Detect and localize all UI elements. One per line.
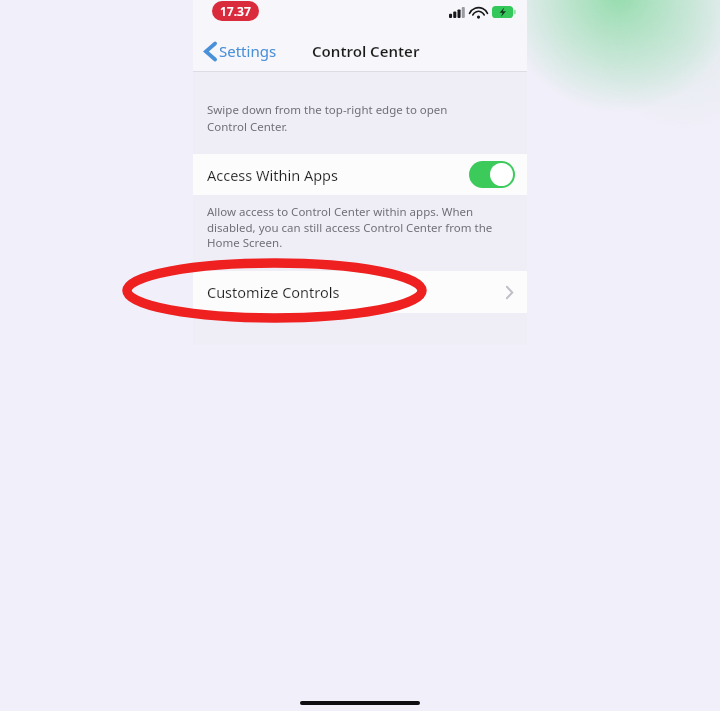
staticText: Settings [219, 41, 277, 61]
staticText: Swipe down from the top-right edge to op… [207, 102, 448, 134]
button[interactable]: Access Within Apps [193, 154, 527, 195]
staticText: Access Within Apps [207, 165, 338, 185]
staticText: Allow access to Control Center within ap… [207, 204, 493, 250]
staticText: Customize Controls [207, 282, 340, 302]
button[interactable]: Settings [202, 37, 280, 65]
button[interactable]: Customize Controls [193, 271, 527, 313]
staticText: 17.37 [220, 3, 251, 19]
staticText: Control Center [312, 41, 420, 61]
button[interactable]: Access Within Apps toggle, on [469, 161, 515, 188]
